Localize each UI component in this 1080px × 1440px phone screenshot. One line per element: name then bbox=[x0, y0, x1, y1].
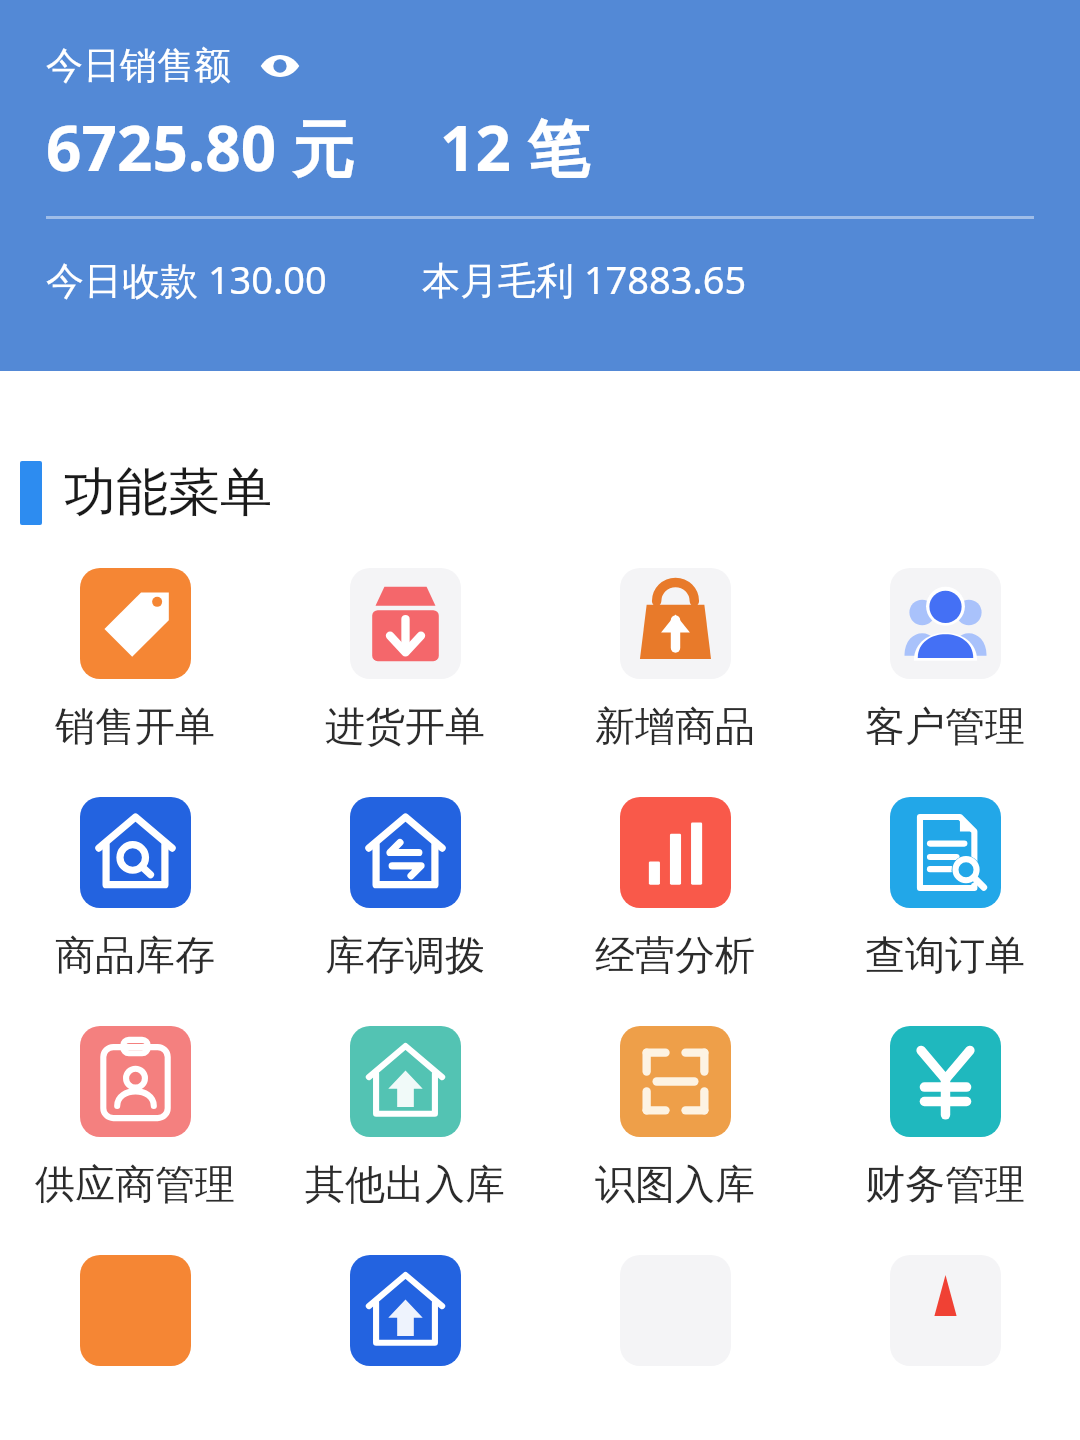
staticText: 商品库存 bbox=[55, 930, 215, 980]
button[interactable]: 查询订单 bbox=[810, 797, 1080, 980]
button[interactable]: 销售开单 bbox=[0, 568, 270, 751]
button[interactable]: 财务管理 bbox=[810, 1026, 1080, 1209]
staticText: 12 笔 bbox=[440, 105, 590, 190]
staticText: 财务管理 bbox=[865, 1159, 1025, 1209]
staticText: 今日销售额 bbox=[46, 42, 231, 89]
button[interactable] bbox=[0, 1255, 270, 1366]
staticText: 识图入库 bbox=[595, 1159, 755, 1209]
button[interactable]: 供应商管理 bbox=[0, 1026, 270, 1209]
button[interactable]: Toggle amount visibility bbox=[257, 43, 303, 89]
staticText: 今日收款 130.00 bbox=[46, 253, 327, 305]
button[interactable]: 客户管理 bbox=[810, 568, 1080, 751]
staticText: 进货开单 bbox=[325, 701, 485, 751]
staticText: 其他出入库 bbox=[305, 1159, 505, 1209]
staticText: 库存调拨 bbox=[325, 930, 485, 980]
button[interactable] bbox=[810, 1255, 1080, 1366]
staticText: 功能菜单 bbox=[64, 460, 272, 526]
button[interactable]: 库存调拨 bbox=[270, 797, 540, 980]
staticText: 销售开单 bbox=[55, 701, 215, 751]
button[interactable]: 进货开单 bbox=[270, 568, 540, 751]
button[interactable]: 商品库存 bbox=[0, 797, 270, 980]
staticText: 本月毛利 17883.65 bbox=[422, 253, 747, 305]
staticText: 6725.80 元 bbox=[46, 105, 355, 190]
staticText: 供应商管理 bbox=[35, 1159, 235, 1209]
button[interactable] bbox=[270, 1255, 540, 1366]
button[interactable]: 其他出入库 bbox=[270, 1026, 540, 1209]
button[interactable]: 识图入库 bbox=[540, 1026, 810, 1209]
staticText: 查询订单 bbox=[865, 930, 1025, 980]
staticText: 新增商品 bbox=[595, 701, 755, 751]
staticText: 经营分析 bbox=[595, 930, 755, 980]
button[interactable]: 新增商品 bbox=[540, 568, 810, 751]
button[interactable]: 经营分析 bbox=[540, 797, 810, 980]
button[interactable] bbox=[540, 1255, 810, 1366]
staticText: 客户管理 bbox=[865, 701, 1025, 751]
